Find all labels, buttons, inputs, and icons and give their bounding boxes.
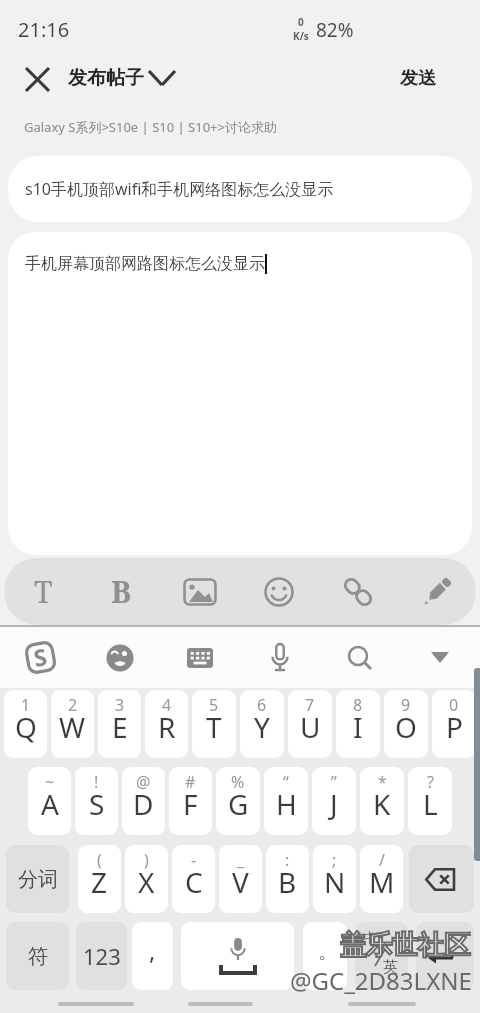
staticText: 盖乐世社区 bbox=[340, 929, 470, 962]
staticText: T bbox=[34, 571, 53, 612]
staticText: 123 bbox=[83, 941, 121, 971]
button[interactable]: ? bbox=[408, 767, 452, 835]
staticText: 手机屏幕顶部网路图标怎么没显示 bbox=[25, 254, 265, 274]
staticText: B bbox=[111, 571, 132, 612]
button[interactable]: T bbox=[4, 558, 82, 625]
staticText: ? bbox=[427, 771, 434, 793]
staticText: 符 bbox=[28, 944, 48, 969]
button[interactable]: / bbox=[360, 845, 403, 913]
button[interactable]: _ bbox=[219, 845, 262, 913]
button[interactable]: ” bbox=[312, 767, 356, 835]
staticText: / bbox=[379, 849, 385, 871]
button[interactable] bbox=[400, 627, 480, 688]
button[interactable]: 。 bbox=[303, 922, 347, 990]
button[interactable]: ( bbox=[78, 845, 121, 913]
staticText: 盖乐世社区 bbox=[340, 929, 470, 962]
button[interactable]: ! bbox=[75, 767, 118, 835]
button[interactable]: % bbox=[216, 767, 260, 835]
button[interactable]: 分词 bbox=[6, 845, 69, 913]
button[interactable]: 发送 bbox=[388, 58, 448, 98]
button[interactable]: 9 bbox=[384, 690, 428, 758]
button[interactable]: 手机屏幕顶部网路图标怎么没显示 bbox=[8, 232, 472, 555]
staticText: ) bbox=[144, 849, 149, 871]
button[interactable] bbox=[239, 558, 318, 625]
button[interactable] bbox=[160, 558, 239, 625]
staticText: “ bbox=[283, 771, 289, 793]
button[interactable]: 6 bbox=[240, 690, 284, 758]
staticText: Y bbox=[254, 708, 270, 746]
staticText: B bbox=[278, 863, 297, 901]
staticText: D bbox=[133, 785, 154, 823]
button[interactable]: 3 bbox=[98, 690, 141, 758]
staticText: H bbox=[276, 785, 297, 823]
button[interactable] bbox=[474, 668, 480, 861]
staticText: ” bbox=[331, 771, 337, 793]
button[interactable] bbox=[409, 845, 474, 913]
staticText: , bbox=[149, 934, 156, 967]
staticText: 5 bbox=[209, 694, 219, 716]
button[interactable]: S bbox=[0, 627, 80, 688]
button[interactable]: “ bbox=[264, 767, 308, 835]
staticText: 发送 bbox=[400, 67, 436, 90]
staticText: K bbox=[373, 785, 391, 823]
button[interactable]: 发布帖子 bbox=[68, 58, 175, 98]
staticText: W bbox=[59, 708, 86, 746]
button[interactable]: ) bbox=[125, 845, 168, 913]
button[interactable] bbox=[181, 922, 294, 990]
staticText: 英 bbox=[383, 958, 398, 977]
staticText: @ bbox=[136, 771, 151, 793]
button[interactable]: # bbox=[169, 767, 212, 835]
button[interactable] bbox=[16, 58, 58, 100]
button[interactable]: 123 bbox=[76, 922, 127, 990]
button[interactable] bbox=[320, 627, 400, 688]
button[interactable]: ; bbox=[313, 845, 356, 913]
button[interactable]: : bbox=[266, 845, 309, 913]
button[interactable] bbox=[397, 558, 476, 625]
staticText: 4 bbox=[162, 694, 172, 716]
button[interactable] bbox=[240, 627, 320, 688]
staticText: ( bbox=[97, 849, 102, 871]
button[interactable]: 1 bbox=[4, 690, 47, 758]
staticText: 发布帖子 bbox=[68, 66, 144, 90]
staticText: @GC_2D83LXNE bbox=[290, 964, 472, 997]
button[interactable]: s10手机顶部wifi和手机网络图标怎么没显示 bbox=[8, 156, 472, 222]
staticText: Galaxy S系列>S10e | S10 | S10+>讨论求助 bbox=[24, 118, 277, 136]
button[interactable]: 中 bbox=[355, 922, 408, 990]
staticText: N bbox=[324, 863, 346, 901]
staticText: ~ bbox=[45, 771, 55, 793]
button[interactable]: 符 bbox=[6, 922, 69, 990]
staticText: M bbox=[369, 863, 395, 901]
staticText: 3 bbox=[115, 694, 125, 716]
staticText: 2 bbox=[68, 694, 78, 716]
button[interactable]: , bbox=[132, 922, 173, 990]
staticText: X bbox=[138, 863, 155, 901]
staticText: O bbox=[395, 708, 417, 746]
staticText: K/s bbox=[293, 29, 309, 43]
button[interactable]: 5 bbox=[192, 690, 236, 758]
staticText: U bbox=[300, 708, 321, 746]
staticText: G bbox=[228, 785, 249, 823]
button[interactable] bbox=[80, 627, 160, 688]
staticText: 中 bbox=[363, 930, 377, 948]
staticText: 8 bbox=[353, 694, 363, 716]
staticText: S bbox=[31, 640, 49, 673]
button[interactable]: * bbox=[360, 767, 404, 835]
button[interactable]: 4 bbox=[145, 690, 188, 758]
staticText: 9 bbox=[401, 694, 411, 716]
button[interactable] bbox=[160, 627, 240, 688]
staticText: * bbox=[378, 771, 387, 793]
button[interactable]: - bbox=[172, 845, 215, 913]
staticText: Z bbox=[91, 863, 108, 901]
button[interactable] bbox=[416, 922, 474, 990]
button[interactable]: ~ bbox=[28, 767, 71, 835]
staticText: : bbox=[285, 849, 290, 871]
button[interactable]: 2 bbox=[51, 690, 94, 758]
staticText: 0 bbox=[298, 15, 304, 29]
staticText: % bbox=[231, 771, 245, 793]
button[interactable]: 7 bbox=[288, 690, 332, 758]
button[interactable]: 0 bbox=[432, 690, 476, 758]
button[interactable]: 8 bbox=[336, 690, 380, 758]
button[interactable]: @ bbox=[122, 767, 165, 835]
button[interactable]: B bbox=[82, 558, 160, 625]
button[interactable] bbox=[318, 558, 397, 625]
